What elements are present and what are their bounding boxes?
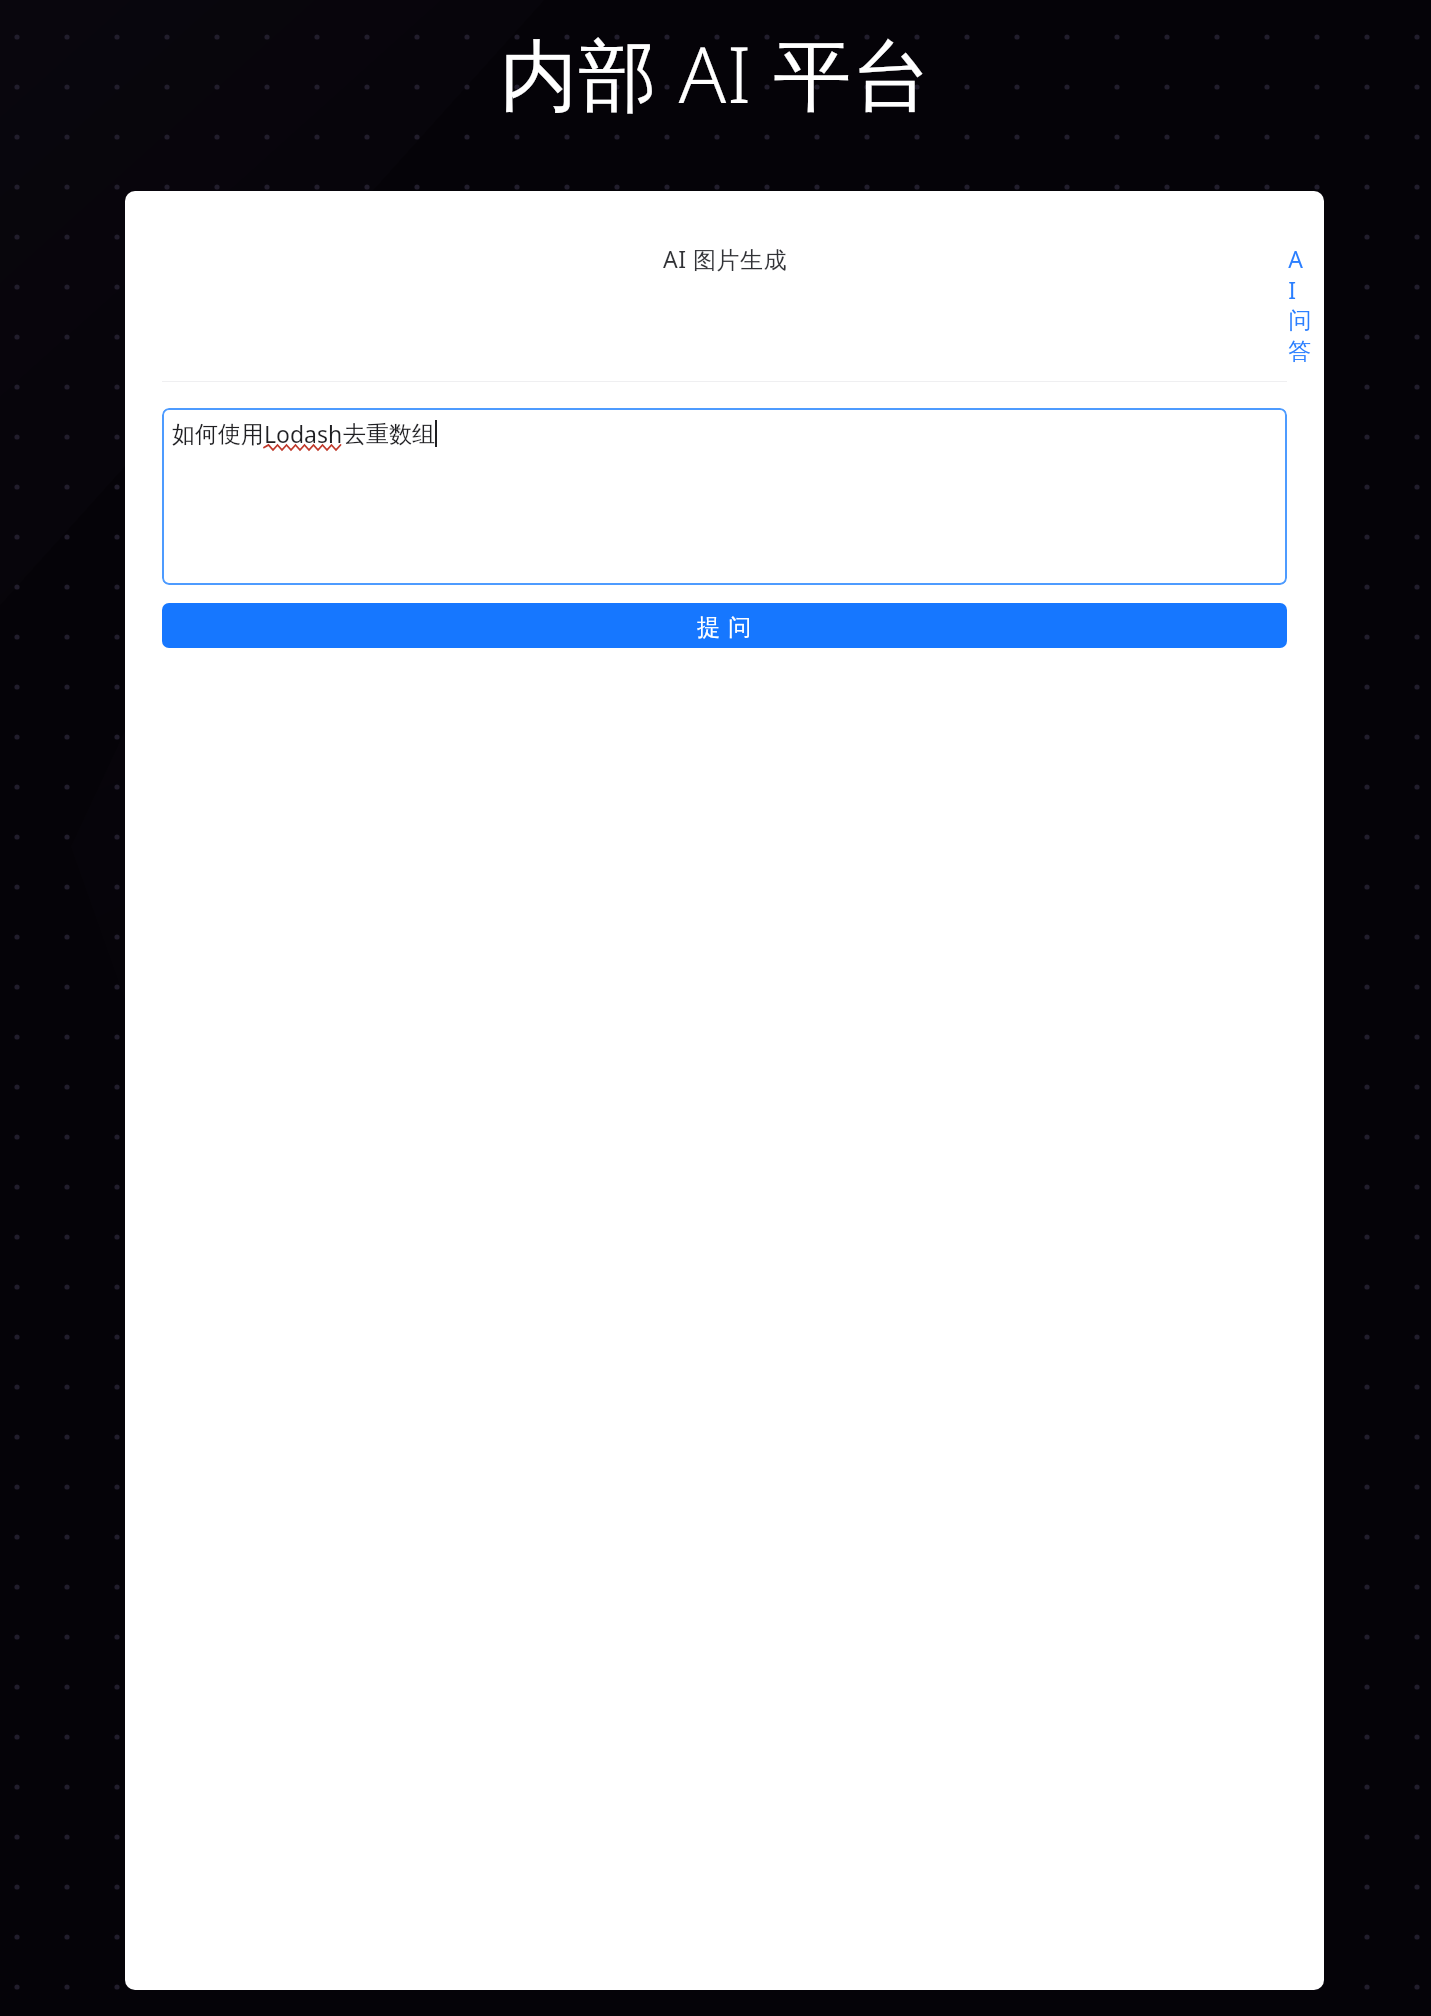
- button[interactable]: AI 图片生成: [162, 243, 1287, 289]
- staticText: Lodash: [264, 418, 343, 449]
- button[interactable]: 提 问: [162, 603, 1287, 648]
- staticText: 内部 AI 平台: [0, 20, 1431, 127]
- staticText: AI 图片生成: [663, 243, 787, 274]
- staticText: 如何使用: [172, 420, 264, 449]
- button[interactable]: 如何使用: [162, 408, 1287, 585]
- staticText: 去重数组: [343, 420, 435, 449]
- staticText: 提 问: [697, 610, 752, 641]
